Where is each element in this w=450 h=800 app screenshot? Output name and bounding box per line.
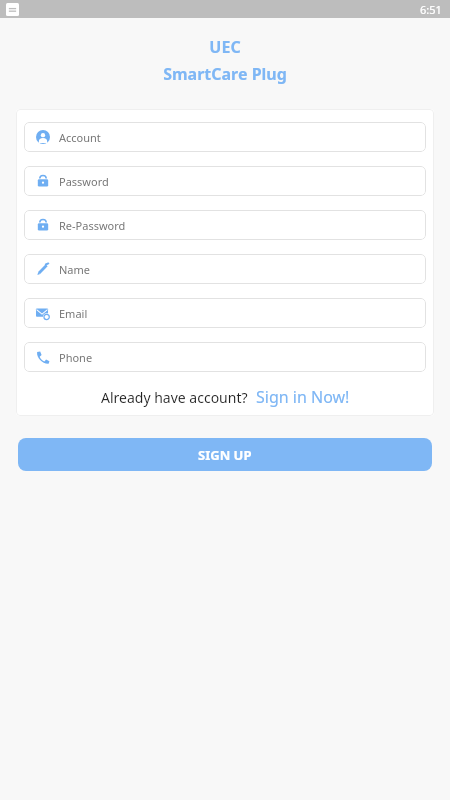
staticText: Name [59,262,91,277]
button[interactable]: Account [24,122,426,152]
staticText: Email [59,306,88,321]
button[interactable]: Name [24,254,426,284]
staticText: Sign in Now! [256,386,350,408]
staticText: Already have account? [101,388,248,407]
staticText: Account [59,130,101,145]
staticText: Phone [59,350,93,365]
staticText: SIGN UP [198,446,252,464]
button[interactable]: Password [24,166,426,196]
staticText: Re-Password [59,218,126,233]
button[interactable]: Phone [24,342,426,372]
staticText: Password [59,174,109,189]
button[interactable]: SIGN UP [18,438,432,471]
staticText: UEC [0,36,450,58]
button[interactable]: Email [24,298,426,328]
button[interactable]: Re-Password [24,210,426,240]
button[interactable]: Sign in Now! [256,386,350,408]
staticText: SmartCare Plug [0,63,450,85]
staticText: 6:51 [420,2,442,17]
